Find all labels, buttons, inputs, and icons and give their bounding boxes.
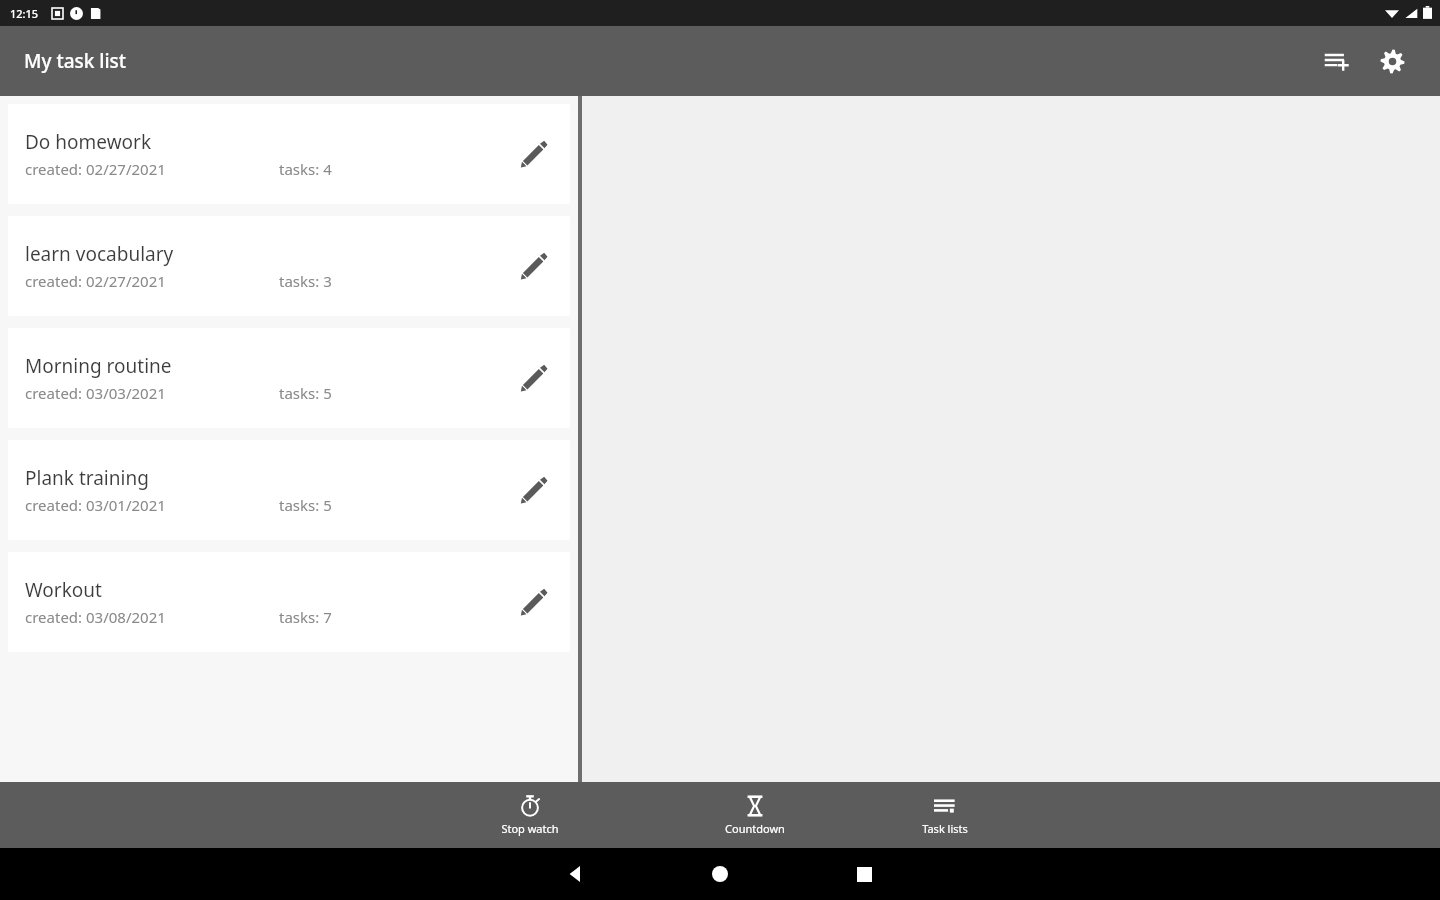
staticText: tasks: 3	[279, 271, 332, 291]
staticText: created: 03/03/2021	[25, 383, 166, 403]
button[interactable]: Plank training	[8, 440, 570, 540]
staticText: Workout	[25, 577, 102, 603]
button[interactable]: Stop watch	[400, 782, 660, 848]
button[interactable]: Edit Do homework	[506, 126, 562, 182]
staticText: created: 03/08/2021	[25, 607, 166, 627]
staticText: tasks: 5	[279, 383, 332, 403]
staticText: Countdown	[725, 821, 785, 836]
button[interactable]: Edit learn vocabulary	[506, 238, 562, 294]
staticText: created: 02/27/2021	[25, 271, 166, 291]
button[interactable]: learn vocabulary	[8, 216, 570, 316]
button[interactable]: Add task list	[1312, 37, 1360, 85]
staticText: tasks: 4	[279, 159, 332, 179]
staticText: tasks: 5	[279, 495, 332, 515]
staticText: learn vocabulary	[25, 241, 174, 267]
button[interactable]: Workout	[8, 552, 570, 652]
button[interactable]: Edit Workout	[506, 574, 562, 630]
staticText: created: 03/01/2021	[25, 495, 166, 515]
staticText: Stop watch	[501, 821, 559, 836]
staticText: Task lists	[922, 821, 968, 836]
staticText: 12:15	[10, 6, 39, 21]
button[interactable]: Task lists	[850, 782, 1040, 848]
button[interactable]: Back	[552, 850, 600, 898]
staticText: created: 02/27/2021	[25, 159, 166, 179]
button[interactable]: Settings	[1368, 37, 1416, 85]
button[interactable]: Edit Plank training	[506, 462, 562, 518]
staticText: Do homework	[25, 129, 152, 155]
staticText: Morning routine	[25, 353, 172, 379]
button[interactable]: Do homework	[8, 104, 570, 204]
button[interactable]: Recents	[840, 850, 888, 898]
staticText: tasks: 7	[279, 607, 332, 627]
button[interactable]: Morning routine	[8, 328, 570, 428]
button[interactable]: Home	[696, 850, 744, 898]
staticText: My task list	[24, 48, 127, 74]
staticText: Plank training	[25, 465, 149, 491]
button[interactable]: Edit Morning routine	[506, 350, 562, 406]
button[interactable]: Countdown	[660, 782, 850, 848]
